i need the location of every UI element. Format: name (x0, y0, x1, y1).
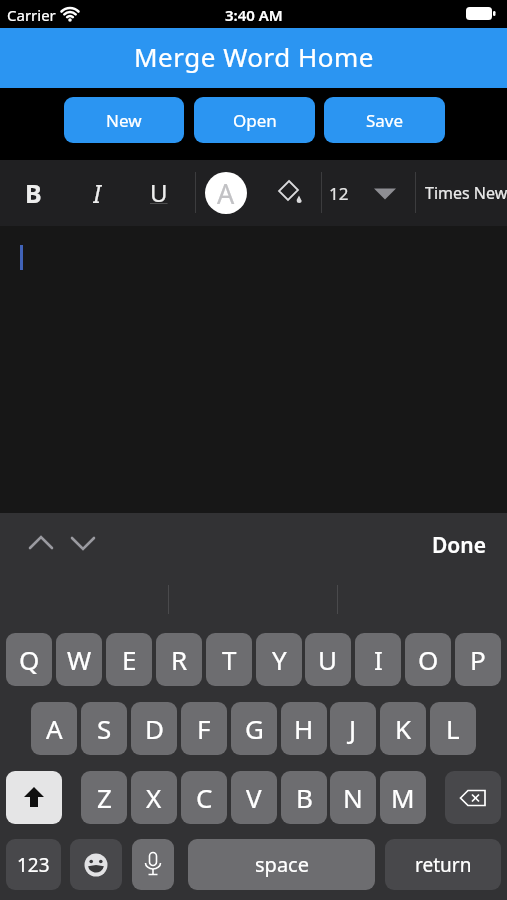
button[interactable]: C (181, 771, 227, 824)
button[interactable]: Done (424, 531, 494, 553)
staticText: R (171, 642, 188, 677)
staticText: 12 (329, 182, 349, 205)
button[interactable]: W (56, 633, 102, 686)
button[interactable]: I (82, 176, 112, 204)
button[interactable] (70, 534, 96, 552)
staticText: J (349, 711, 357, 746)
button[interactable]: T (206, 633, 252, 686)
button[interactable]: O (405, 633, 451, 686)
staticText: C (196, 780, 213, 815)
button[interactable] (445, 771, 501, 824)
staticText: G (245, 711, 264, 746)
button[interactable]: U (144, 176, 174, 204)
staticText: B (25, 176, 42, 204)
button[interactable]: 12 (325, 179, 353, 207)
staticText: I (93, 176, 102, 204)
staticText: Save (366, 109, 404, 132)
staticText: O (418, 642, 439, 677)
button[interactable]: N (330, 771, 376, 824)
button[interactable]: R (156, 633, 202, 686)
button[interactable]: K (380, 702, 426, 755)
button[interactable] (276, 179, 304, 207)
button[interactable]: H (281, 702, 327, 755)
staticText: Y (272, 642, 287, 677)
button[interactable]: Q (6, 633, 52, 686)
button[interactable]: A (205, 172, 247, 214)
staticText: Done (432, 531, 487, 553)
button[interactable] (70, 839, 122, 890)
staticText: A (217, 175, 235, 212)
staticText: U (150, 176, 168, 204)
staticText: S (97, 711, 112, 746)
button[interactable]: New (64, 97, 184, 143)
staticText: P (470, 642, 486, 677)
button[interactable]: L (430, 702, 476, 755)
staticText: D (145, 711, 164, 746)
button[interactable]: M (380, 771, 426, 824)
button[interactable]: G (231, 702, 277, 755)
button[interactable]: Y (256, 633, 302, 686)
staticText: E (122, 642, 137, 677)
staticText: New (106, 109, 142, 132)
button[interactable]: return (385, 839, 501, 890)
staticText: B (296, 780, 313, 815)
staticText: return (415, 852, 472, 878)
button[interactable]: F (181, 702, 227, 755)
button[interactable]: Open (194, 97, 315, 143)
button[interactable]: U (305, 633, 351, 686)
staticText: T (222, 642, 237, 677)
button[interactable]: D (131, 702, 177, 755)
staticText: M (391, 780, 415, 815)
button[interactable]: A (31, 702, 77, 755)
button[interactable] (373, 187, 397, 201)
staticText: Z (97, 780, 112, 815)
staticText: N (343, 780, 363, 815)
staticText: W (67, 642, 92, 677)
button[interactable]: J (330, 702, 376, 755)
button[interactable]: Save (324, 97, 445, 143)
staticText: 123 (17, 852, 50, 878)
button[interactable]: Times New Ro (425, 179, 507, 207)
staticText: Carrier (7, 5, 56, 23)
button[interactable]: B (281, 771, 327, 824)
button[interactable]: 123 (6, 839, 61, 890)
button[interactable]: S (81, 702, 127, 755)
button[interactable] (28, 534, 54, 552)
staticText: Times New Ro (425, 182, 507, 204)
staticText: K (395, 711, 412, 746)
staticText: Q (19, 642, 40, 677)
staticText: I (374, 642, 383, 677)
button[interactable]: Z (81, 771, 127, 824)
button[interactable]: V (231, 771, 277, 824)
staticText: V (246, 780, 262, 815)
staticText: H (294, 711, 314, 746)
button[interactable]: I (355, 633, 401, 686)
button[interactable]: E (106, 633, 152, 686)
staticText: Open (233, 109, 277, 132)
staticText: space (255, 851, 309, 878)
button[interactable]: B (18, 176, 48, 204)
staticText: U (318, 642, 338, 677)
button[interactable]: space (188, 839, 375, 890)
staticText: 3:40 AM (225, 5, 283, 23)
button[interactable] (6, 771, 62, 824)
staticText: Merge Word Home (134, 39, 374, 74)
button[interactable]: P (455, 633, 501, 686)
button[interactable] (0, 226, 507, 513)
staticText: A (46, 711, 63, 746)
staticText: L (446, 711, 460, 746)
button[interactable]: X (131, 771, 177, 824)
button[interactable] (132, 839, 174, 890)
staticText: X (146, 780, 162, 815)
staticText: F (197, 711, 211, 746)
